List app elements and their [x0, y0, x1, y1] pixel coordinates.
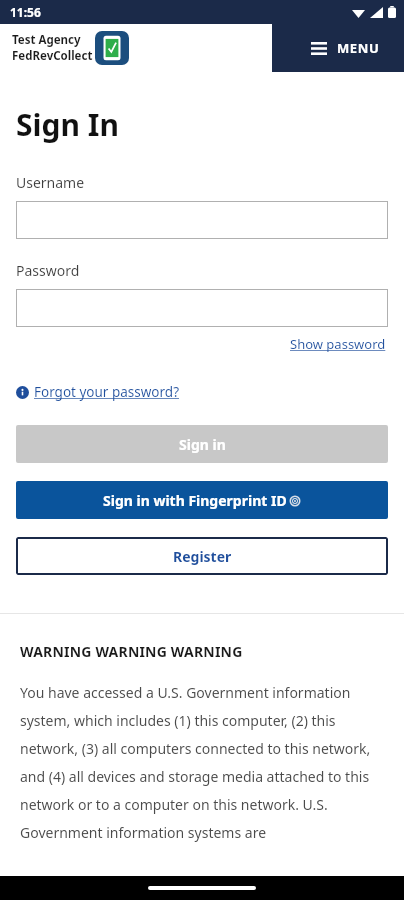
staticText: Username: [16, 173, 85, 192]
staticText: You have accessed a U.S. Government info…: [20, 683, 388, 842]
button[interactable]: Register: [16, 537, 388, 575]
staticText: Sign in: [179, 435, 226, 454]
staticText: WARNING WARNING WARNING: [20, 642, 243, 661]
staticText: Test Agency: [12, 32, 81, 48]
button[interactable]: Show password: [288, 333, 388, 355]
staticText: Password: [16, 261, 80, 280]
button[interactable]: Sign in with Fingerprint ID: [16, 481, 388, 519]
button[interactable]: Sign in: [16, 425, 388, 463]
staticText: Register: [173, 547, 232, 566]
staticText: FedRevCollect: [12, 48, 93, 64]
staticText: MENU: [337, 39, 380, 57]
button[interactable]: Test Agency FedRevCollect home: [0, 24, 272, 72]
button[interactable]: Forgot your password?: [16, 381, 180, 403]
staticText: Sign in with Fingerprint ID: [103, 491, 287, 510]
staticText: Forgot your password?: [34, 383, 180, 401]
button[interactable]: MENU: [305, 33, 386, 63]
button[interactable]: Username field: [16, 201, 388, 239]
staticText: Sign In: [16, 104, 119, 145]
staticText: 11:56: [10, 4, 41, 20]
button[interactable]: Password field: [16, 289, 388, 327]
